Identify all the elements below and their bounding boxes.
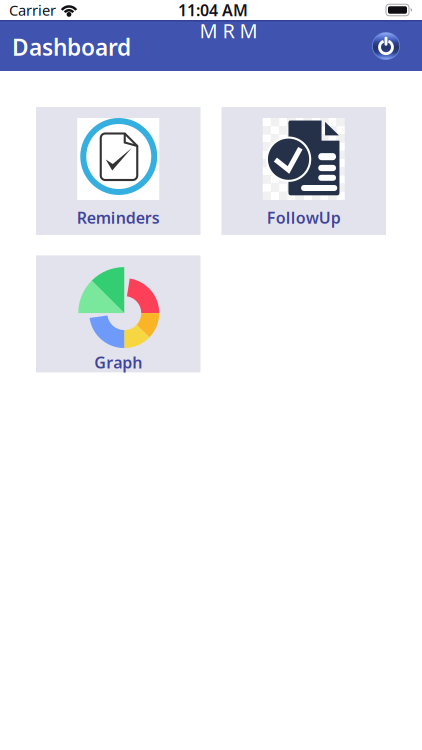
staticText: Graph	[94, 352, 142, 373]
staticText: Dashboard	[12, 32, 131, 62]
button[interactable]: Reminders	[36, 107, 200, 235]
staticText: Carrier	[9, 0, 56, 20]
staticText: Reminders	[77, 207, 160, 228]
staticText: FollowUp	[267, 207, 341, 228]
staticText: 11:04 AM	[178, 0, 248, 21]
staticText: M R M	[199, 17, 257, 44]
button[interactable]: FollowUp	[221, 107, 386, 235]
button[interactable]: Power	[367, 27, 405, 65]
button[interactable]: Graph	[36, 255, 200, 372]
